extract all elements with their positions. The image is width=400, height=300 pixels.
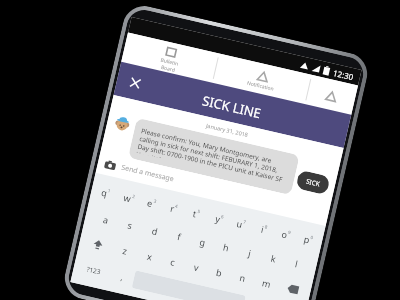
button[interactable]: f bbox=[164, 221, 194, 252]
button[interactable]: h bbox=[212, 232, 241, 262]
staticText: SICK LINE bbox=[201, 91, 263, 122]
staticText: x bbox=[146, 250, 154, 262]
staticText: 3 bbox=[153, 198, 157, 204]
button[interactable]: Bulletin Board bbox=[121, 32, 219, 83]
staticText: f bbox=[176, 230, 183, 243]
button[interactable]: a bbox=[91, 204, 121, 235]
staticText: , bbox=[120, 271, 125, 283]
button[interactable]: n bbox=[228, 262, 257, 293]
staticText: j bbox=[247, 246, 253, 259]
staticText: January 31, 2018 bbox=[205, 122, 249, 138]
button[interactable]: r bbox=[160, 193, 188, 224]
staticText: t bbox=[192, 207, 198, 220]
staticText: e bbox=[146, 196, 154, 209]
staticText: 4 bbox=[175, 203, 179, 209]
staticText: 7 bbox=[243, 218, 247, 225]
staticText: b bbox=[215, 266, 224, 279]
staticText: 12:30 bbox=[332, 67, 355, 82]
staticText: i bbox=[260, 223, 266, 235]
button[interactable]: c bbox=[158, 246, 187, 277]
button[interactable]: x bbox=[135, 241, 164, 271]
staticText: z bbox=[122, 244, 129, 257]
button[interactable]: k bbox=[258, 243, 288, 273]
staticText: o bbox=[280, 227, 289, 240]
button[interactable]: b bbox=[205, 257, 234, 288]
staticText: p bbox=[303, 233, 311, 246]
staticText: c bbox=[169, 255, 177, 268]
staticText: d bbox=[151, 224, 159, 237]
button[interactable]: Close bbox=[123, 70, 147, 94]
staticText: 0 bbox=[310, 234, 314, 240]
button[interactable]: SICK bbox=[295, 170, 331, 195]
button[interactable]: Space bbox=[132, 270, 246, 300]
staticText: s bbox=[126, 219, 134, 231]
staticText: 9 bbox=[288, 229, 292, 235]
button[interactable]: q bbox=[91, 177, 120, 208]
staticText: u bbox=[236, 217, 244, 230]
staticText: n bbox=[239, 271, 247, 284]
staticText: 5 bbox=[197, 208, 201, 214]
staticText: w bbox=[123, 191, 133, 204]
button[interactable]: v bbox=[181, 251, 211, 282]
button[interactable]: Camera bbox=[96, 151, 330, 226]
staticText: r bbox=[169, 202, 176, 214]
staticText: y bbox=[214, 212, 222, 225]
staticText: h bbox=[222, 241, 230, 254]
staticText: Notification bbox=[246, 80, 275, 93]
button[interactable]: , bbox=[108, 261, 137, 292]
button[interactable]: z bbox=[110, 235, 140, 266]
button[interactable]: w bbox=[114, 183, 143, 213]
button[interactable]: u bbox=[227, 209, 255, 239]
button[interactable]: Backspace bbox=[275, 273, 311, 300]
button[interactable]: d bbox=[139, 215, 170, 246]
button[interactable]: p bbox=[294, 224, 323, 255]
staticText: m bbox=[261, 276, 272, 290]
other: Camera bbox=[104, 159, 117, 172]
button[interactable]: j bbox=[235, 237, 264, 268]
staticText: k bbox=[270, 252, 277, 264]
staticText: a bbox=[102, 213, 111, 226]
button[interactable]: e bbox=[138, 188, 166, 218]
button[interactable]: t bbox=[182, 198, 211, 229]
button[interactable]: m bbox=[252, 268, 281, 298]
staticText: 1 bbox=[107, 187, 112, 194]
staticText: l bbox=[294, 257, 300, 270]
staticText: Bulletin Board bbox=[158, 57, 179, 73]
button[interactable]: Shift bbox=[79, 228, 116, 260]
staticText: Please confirm: You, Mary Montgomery, ar… bbox=[136, 126, 291, 187]
button[interactable] bbox=[305, 75, 358, 115]
button[interactable]: o bbox=[272, 219, 300, 249]
staticText: v bbox=[193, 260, 200, 273]
button[interactable]: i bbox=[250, 214, 278, 244]
staticText: Send a message bbox=[120, 163, 175, 184]
staticText: 6 bbox=[220, 213, 225, 220]
staticText: SICK bbox=[305, 176, 321, 188]
button[interactable]: l bbox=[282, 248, 311, 279]
button[interactable]: ?123 bbox=[73, 253, 114, 287]
button[interactable]: s bbox=[115, 209, 145, 240]
button[interactable]: g bbox=[188, 226, 217, 257]
staticText: q bbox=[100, 186, 109, 199]
staticText: 2 bbox=[132, 193, 136, 199]
staticText: 8 bbox=[264, 223, 269, 230]
staticText: ?123 bbox=[86, 264, 101, 276]
button[interactable]: Notification bbox=[213, 54, 311, 104]
staticText: g bbox=[199, 235, 207, 248]
button[interactable]: . bbox=[241, 292, 269, 300]
button[interactable]: y bbox=[205, 203, 233, 234]
